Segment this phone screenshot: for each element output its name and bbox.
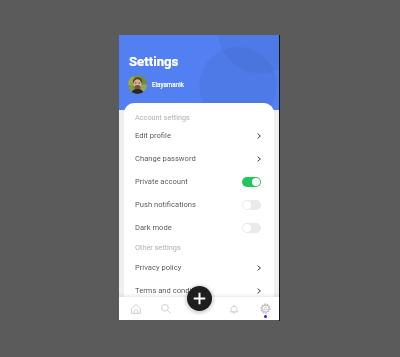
staticText: Change password	[135, 154, 196, 163]
button[interactable]: Private account	[130, 170, 268, 193]
button[interactable]: Add	[187, 286, 212, 311]
button[interactable]: Settings	[250, 297, 279, 320]
staticText: Privacy policy	[135, 263, 182, 272]
staticText: Other settings	[135, 243, 181, 252]
staticText: Push notifications	[135, 200, 196, 209]
button[interactable]: Dark mode	[130, 216, 268, 239]
staticText: Terms and conditions	[135, 286, 209, 295]
staticText: Elayamanik	[152, 81, 184, 88]
button[interactable]: Edit profile	[130, 124, 268, 147]
button[interactable]: Change password	[130, 147, 268, 170]
staticText: Private account	[135, 177, 188, 186]
staticText: Dark mode	[135, 223, 172, 232]
button[interactable]: Search	[151, 297, 181, 320]
staticText: Settings	[129, 54, 179, 69]
button[interactable]: Terms and conditions	[130, 279, 268, 302]
staticText: Edit profile	[135, 131, 171, 140]
button[interactable]: Notifications	[219, 297, 249, 320]
button[interactable]: Privacy policy	[130, 256, 268, 279]
button[interactable]: Push notifications	[130, 193, 268, 216]
button[interactable]: Home	[121, 297, 151, 320]
staticText: Account settings	[135, 113, 190, 122]
